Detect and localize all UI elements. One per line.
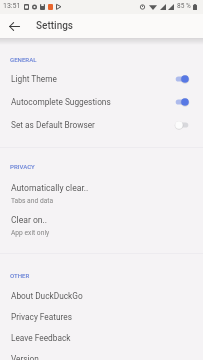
staticText: Tabs and data — [11, 197, 54, 205]
button[interactable]: About DuckDuckGo — [0, 285, 203, 306]
button[interactable]: Back — [0, 14, 29, 38]
staticText: 85 % — [177, 2, 191, 10]
staticText: Version — [11, 354, 39, 360]
button[interactable]: Version — [0, 348, 203, 360]
staticText: Settings — [36, 20, 74, 32]
button[interactable]: Set as Default Browser — [0, 113, 203, 136]
button[interactable]: Leave Feedback — [0, 327, 203, 348]
button[interactable]: Automatically clear.. — [0, 174, 203, 206]
staticText: GENERAL — [10, 56, 37, 63]
button[interactable]: Privacy Features — [0, 306, 203, 327]
staticText: Set as Default Browser — [11, 120, 175, 130]
staticText: Automatically clear.. — [11, 183, 89, 193]
staticText: 13:51 — [3, 2, 21, 10]
staticText: App exit only — [11, 229, 50, 237]
button[interactable]: Autocomplete Suggestions — [0, 90, 203, 113]
staticText: OTHER — [10, 272, 30, 279]
staticText: About DuckDuckGo — [11, 291, 83, 301]
button[interactable]: Clear on.. — [0, 206, 203, 238]
staticText: Clear on.. — [11, 215, 48, 225]
staticText: Autocomplete Suggestions — [11, 97, 175, 107]
staticText: Privacy Features — [11, 312, 72, 322]
button[interactable]: Light Theme — [0, 67, 203, 90]
staticText: PRIVACY — [10, 163, 35, 170]
staticText: Leave Feedback — [11, 333, 71, 343]
staticText: Light Theme — [11, 74, 175, 84]
